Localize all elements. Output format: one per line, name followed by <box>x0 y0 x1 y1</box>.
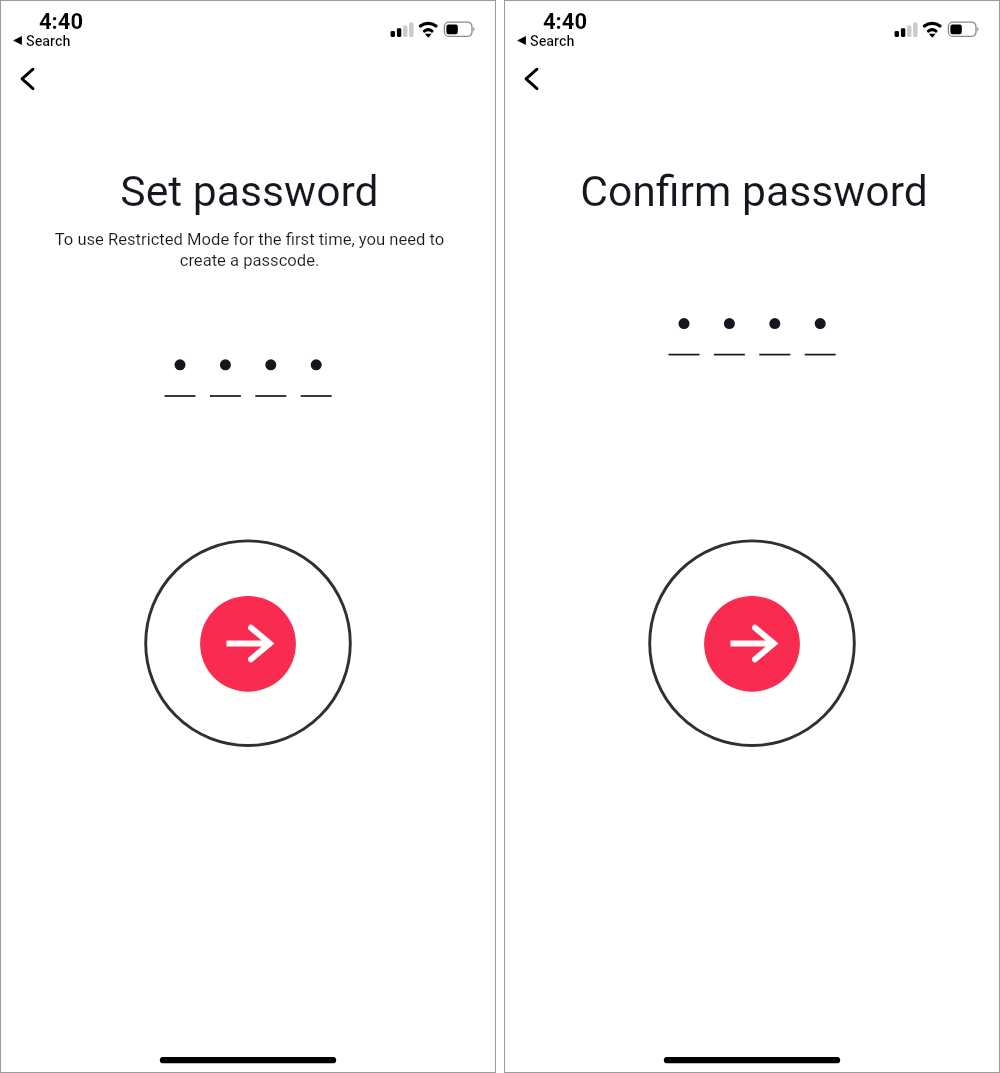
button[interactable]: Back to Search <box>515 31 577 49</box>
staticText: Search <box>530 33 575 50</box>
button[interactable]: Continue <box>650 541 854 745</box>
staticText: Set password <box>120 166 379 216</box>
staticText: 4:40 <box>543 9 588 35</box>
staticText: To use Restricted Mode for the first tim… <box>52 230 447 270</box>
staticText: 4:40 <box>39 9 84 35</box>
button[interactable]: Back <box>511 58 553 100</box>
button[interactable]: Continue <box>146 541 350 745</box>
staticText: Search <box>26 33 71 50</box>
button[interactable]: Back to Search <box>11 31 73 49</box>
button[interactable]: Back <box>7 58 49 100</box>
staticText: Confirm password <box>580 166 928 216</box>
